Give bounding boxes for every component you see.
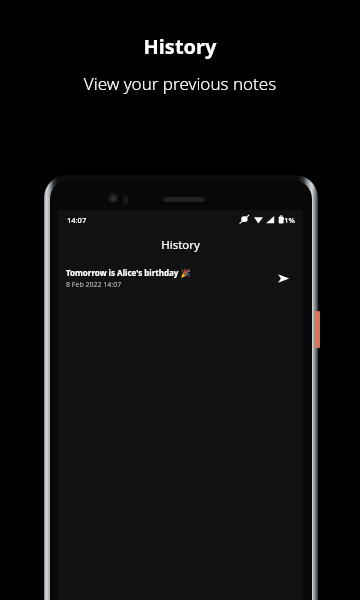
staticText: 71% (280, 215, 295, 225)
staticText: 8 Feb 2022 14:07 (66, 280, 122, 290)
staticText: History (0, 33, 360, 60)
staticText: 14:07 (67, 215, 87, 225)
button[interactable]: Play note (274, 269, 292, 287)
staticText: View your previous notes (0, 72, 360, 95)
staticText: Tomorrow is Alice's birthday 🎉 (66, 267, 191, 278)
button[interactable]: Tomorrow is Alice's birthday 🎉 (58, 264, 303, 292)
staticText: History (58, 237, 303, 253)
